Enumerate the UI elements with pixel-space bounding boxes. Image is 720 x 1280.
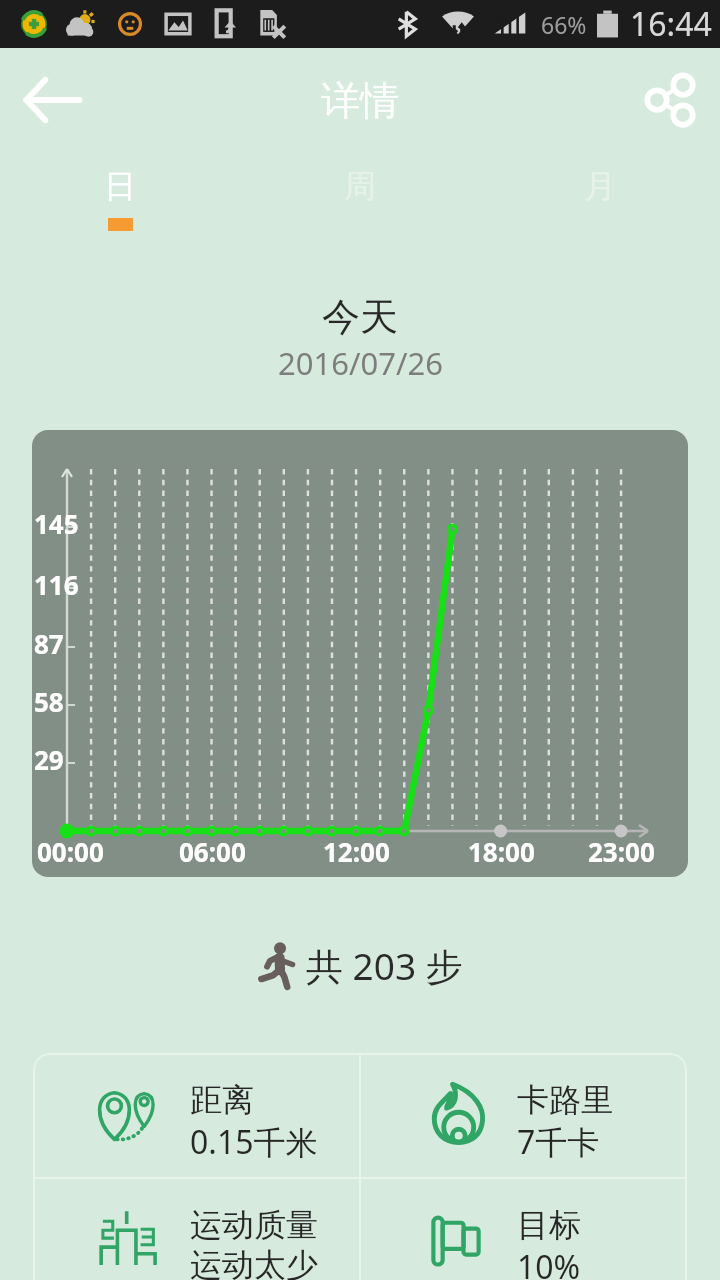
staticText: 116 [34,567,79,602]
button[interactable]: 目标 [360,1178,687,1262]
staticText: 周 [344,166,376,206]
button[interactable]: 运动质量 [33,1178,360,1258]
staticText: 29 [34,742,64,777]
staticText: 月 [584,166,616,206]
staticText: 目标 [517,1205,581,1245]
staticText: 今天 [322,293,398,341]
button[interactable]: 距离 [33,1053,360,1137]
staticText: 卡路里 [517,1080,613,1120]
button[interactable]: 日 [0,152,240,231]
staticText: 58 [34,684,64,719]
staticText: 16:44 [630,2,712,46]
staticText: 23:00 [588,834,655,869]
staticText: 7千卡 [517,1120,600,1164]
staticText: 共 203 步 [306,940,463,991]
staticText: 12:00 [323,834,390,869]
staticText: 06:00 [179,834,246,869]
staticText: 运动太少 [190,1245,318,1280]
button[interactable]: 卡路里 [360,1053,687,1137]
staticText: 日 [104,166,136,206]
staticText: 2016/07/26 [278,342,443,384]
staticText: 66% [541,9,587,40]
staticText: 详情 [321,76,399,125]
button[interactable]: Back [14,62,90,138]
staticText: 0.15千米 [190,1120,318,1164]
staticText: 145 [34,506,79,541]
staticText: 18:00 [468,834,535,869]
staticText: 00:00 [37,834,104,869]
staticText: 运动质量 [190,1205,318,1245]
button[interactable]: Share [632,62,708,138]
staticText: 距离 [190,1080,254,1120]
staticText: 87 [34,626,64,661]
staticText: 10% [517,1245,581,1280]
